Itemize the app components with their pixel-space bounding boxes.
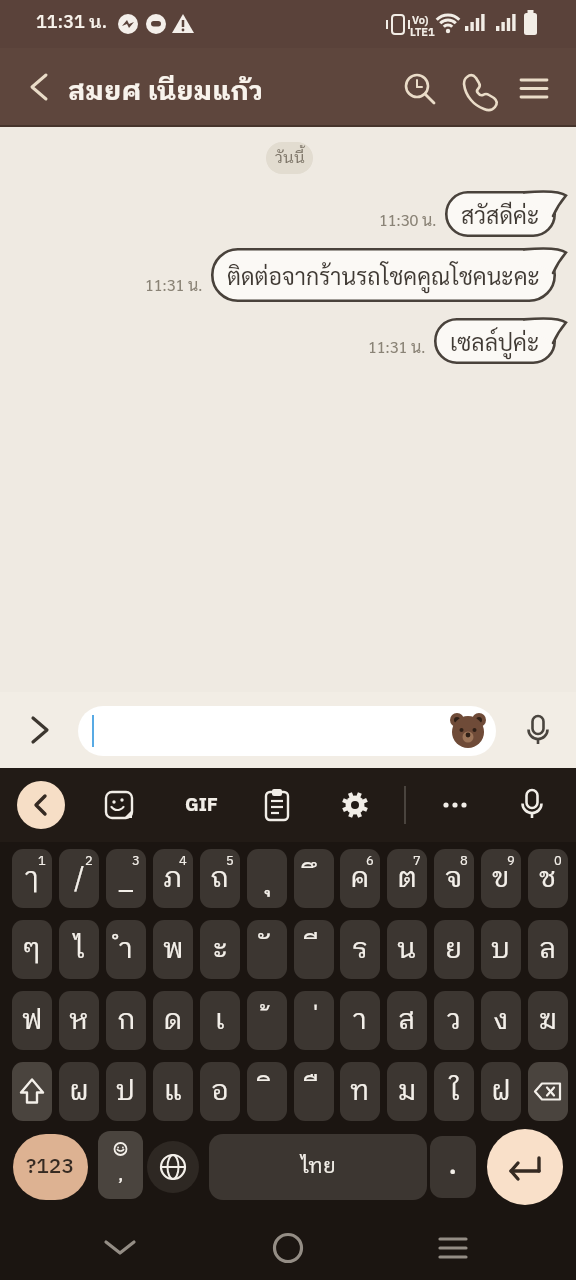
button[interactable] xyxy=(18,66,60,108)
button[interactable]: ั xyxy=(247,920,287,979)
staticText: GIF xyxy=(185,790,218,821)
staticText: ต xyxy=(397,856,418,902)
button[interactable]: ึ xyxy=(294,849,334,908)
button[interactable]: สวัสดีค่ะ xyxy=(445,191,556,237)
button[interactable]: า xyxy=(340,991,380,1050)
button[interactable]: เ xyxy=(200,991,240,1050)
button[interactable] xyxy=(510,783,554,827)
staticText: LTE1 xyxy=(410,24,435,42)
button[interactable]: ป xyxy=(106,1062,146,1121)
staticText: จ xyxy=(445,856,463,902)
staticText: เซลล์ปูค่ะ xyxy=(450,326,540,356)
button[interactable]: ล xyxy=(528,920,568,979)
staticText: ?123 xyxy=(26,1150,75,1185)
button[interactable]: GIF xyxy=(176,783,226,827)
button[interactable] xyxy=(396,66,442,112)
button[interactable]: ง xyxy=(481,991,521,1050)
button[interactable]: ้ xyxy=(247,991,287,1050)
button[interactable] xyxy=(17,781,65,829)
button[interactable]: ฆ xyxy=(528,991,568,1050)
button[interactable]: จ xyxy=(434,849,474,908)
staticText: ผ xyxy=(69,1069,89,1115)
button[interactable]: ถ xyxy=(200,849,240,908)
staticText: ง xyxy=(493,998,509,1044)
button[interactable]: ว xyxy=(434,991,474,1050)
button[interactable]: / xyxy=(59,849,99,908)
staticText: ล xyxy=(539,927,557,973)
staticText: ิ xyxy=(264,1069,271,1115)
button[interactable] xyxy=(433,783,477,827)
button[interactable]: ส xyxy=(387,991,427,1050)
button[interactable] xyxy=(147,1141,199,1193)
button[interactable]: ิ xyxy=(247,1062,287,1121)
button[interactable]: เซลล์ปูค่ะ xyxy=(434,318,556,364)
button[interactable]: ต xyxy=(387,849,427,908)
button[interactable] xyxy=(516,708,560,752)
button[interactable]: ๅ xyxy=(12,849,52,908)
button[interactable]: ห xyxy=(59,991,99,1050)
button[interactable]: ฝ xyxy=(481,1062,521,1121)
button[interactable]: บ xyxy=(481,920,521,979)
staticText: 4 xyxy=(179,850,187,871)
button[interactable]: ม xyxy=(387,1062,427,1121)
button[interactable]: ำ xyxy=(106,920,146,979)
staticText: ค xyxy=(350,856,370,902)
button[interactable]: ย xyxy=(434,920,474,979)
staticText: 5 xyxy=(226,850,234,871)
button[interactable] xyxy=(456,66,502,112)
button[interactable]: พ xyxy=(153,920,193,979)
button[interactable]: ผ xyxy=(59,1062,99,1121)
button[interactable]: แ xyxy=(153,1062,193,1121)
button[interactable]: ไ xyxy=(59,920,99,979)
button[interactable]: ฟ xyxy=(12,991,52,1050)
button[interactable] xyxy=(78,706,496,756)
button[interactable] xyxy=(97,783,141,827)
button[interactable]: ื xyxy=(294,1062,334,1121)
staticText: ะ xyxy=(213,927,228,973)
button[interactable] xyxy=(487,1129,563,1205)
button[interactable]: , xyxy=(98,1131,143,1199)
button[interactable]: ติดต่อจากร้านรถโชคคูณโชคนะคะ xyxy=(211,248,556,302)
button[interactable]: ่ xyxy=(294,991,334,1050)
button[interactable]: อ xyxy=(200,1062,240,1121)
staticText: ป xyxy=(116,1069,136,1115)
staticText: , xyxy=(118,1158,124,1191)
staticText: ึ xyxy=(311,856,318,902)
button[interactable]: ภ xyxy=(153,849,193,908)
button[interactable]: ท xyxy=(340,1062,380,1121)
button[interactable]: ุ xyxy=(247,849,287,908)
button[interactable]: ข xyxy=(481,849,521,908)
button[interactable] xyxy=(528,1062,568,1121)
button[interactable]: ?123 xyxy=(13,1134,88,1200)
staticText: ๆ xyxy=(23,927,41,973)
button[interactable]: . xyxy=(430,1136,476,1198)
staticText: ย xyxy=(445,927,463,973)
button[interactable]: _ xyxy=(106,849,146,908)
staticText: แ xyxy=(164,1069,182,1115)
button[interactable]: ๆ xyxy=(12,920,52,979)
button[interactable] xyxy=(18,708,62,752)
button[interactable]: ช xyxy=(528,849,568,908)
button[interactable]: ไทย xyxy=(209,1134,427,1200)
button[interactable]: ใ xyxy=(434,1062,474,1121)
staticText: ฟ xyxy=(22,998,43,1044)
button[interactable]: ก xyxy=(106,991,146,1050)
button[interactable]: ร xyxy=(340,920,380,979)
button[interactable] xyxy=(333,783,377,827)
staticText: 11:31 น. xyxy=(145,274,203,295)
staticText: เ xyxy=(215,998,225,1044)
button[interactable]: ะ xyxy=(200,920,240,979)
button[interactable]: ค xyxy=(340,849,380,908)
button[interactable] xyxy=(510,66,558,112)
staticText: 9 xyxy=(507,850,515,871)
button[interactable] xyxy=(12,1062,52,1121)
staticText: ไทย xyxy=(301,1150,336,1185)
button[interactable] xyxy=(429,1224,477,1270)
button[interactable]: ี xyxy=(294,920,334,979)
staticText: ห xyxy=(69,998,89,1044)
button[interactable] xyxy=(264,1224,312,1270)
button[interactable]: ด xyxy=(153,991,193,1050)
button[interactable]: น xyxy=(387,920,427,979)
button[interactable] xyxy=(255,783,299,827)
button[interactable] xyxy=(96,1224,144,1270)
